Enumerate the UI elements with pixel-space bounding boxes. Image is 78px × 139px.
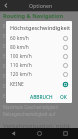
- button[interactable]: Recents: [52, 128, 78, 139]
- staticText: Einstellung: [3, 73, 30, 80]
- staticText: 110 km/h: [10, 62, 32, 69]
- button[interactable]: Einstellung: [3, 21, 75, 31]
- staticText: Höchstgeschwindigkeit: [10, 24, 71, 31]
- staticText: Einstellung: [3, 43, 30, 50]
- staticText: Verkehrssituation: nicht: [3, 122, 70, 130]
- staticText: Einstellung: [3, 83, 30, 90]
- button[interactable]: Home: [26, 128, 52, 139]
- staticText: Einstellung: [3, 63, 30, 70]
- staticText: Maximale Geschwindigkeit: [3, 104, 59, 110]
- staticText: 80 km/h: [10, 44, 29, 51]
- staticText: OK: [60, 94, 67, 101]
- staticText: Einstellung: [3, 23, 30, 30]
- staticText: 120 km/h: [10, 71, 32, 78]
- button[interactable]: Back: [0, 0, 11, 11]
- button[interactable]: 60 km/h: [6, 34, 72, 43]
- button[interactable]: Einstellung: [3, 61, 75, 71]
- staticText: ABBRUCH: [30, 94, 53, 101]
- staticText: 60 km/h: [10, 35, 29, 42]
- button[interactable]: Einstellung: [3, 51, 75, 61]
- staticText: Einstellung: [3, 93, 30, 100]
- button[interactable]: Verkehrssituation: nicht: [3, 122, 75, 138]
- button[interactable]: Einstellung: [3, 81, 75, 91]
- staticText: Einstellung: [3, 33, 30, 40]
- button[interactable]: 80 km/h: [6, 43, 72, 52]
- button[interactable]: KEINE: [6, 79, 72, 90]
- button[interactable]: Einstellung: [3, 71, 75, 81]
- button[interactable]: Einstellung: [3, 41, 75, 51]
- button[interactable]: Back: [0, 128, 26, 139]
- button[interactable]: Einstellung: [3, 31, 75, 41]
- staticText: 100 km/h: [10, 53, 32, 60]
- button[interactable]: 120 km/h: [6, 70, 72, 79]
- button[interactable]: Einstellung: [3, 91, 75, 101]
- staticText: Optionen: [29, 2, 53, 9]
- staticText: Einstellung: [3, 53, 30, 60]
- staticText: KEINE: [10, 81, 24, 88]
- button[interactable]: 100 km/h: [6, 52, 72, 61]
- staticText: berücksichtigen: [3, 130, 48, 138]
- staticText: Routing & Navigation: [3, 12, 64, 20]
- button[interactable]: ABBRUCH: [28, 93, 55, 102]
- button[interactable]: OK: [58, 93, 69, 102]
- staticText: Reisegeschwindigkeit auf Autobahn: [3, 111, 75, 117]
- button[interactable]: 110 km/h: [6, 61, 72, 70]
